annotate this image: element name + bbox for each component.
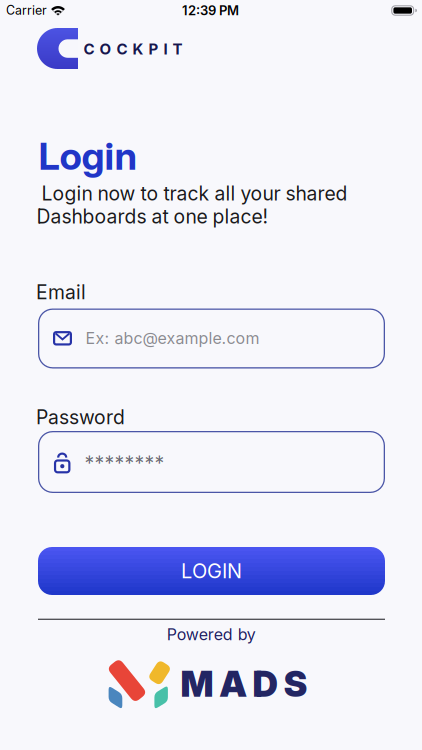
staticText: LOGIN [181,559,242,583]
staticText: Login now to track all your shared [41,182,347,205]
staticText: 12:39 PM [182,3,239,18]
staticText: M A D S [180,663,307,705]
staticText: Email [36,281,86,304]
button[interactable]: Password [38,431,385,493]
staticText: Login [38,133,137,179]
staticText: Password [36,406,125,429]
staticText: ******** [84,452,164,475]
staticText: Powered by [167,625,256,644]
staticText: C O C K P I T [83,40,182,58]
button[interactable]: Email [38,308,385,368]
staticText: Carrier [6,3,47,18]
staticText: Ex: abc@example.com [85,329,259,348]
button[interactable]: LOGIN [38,547,385,595]
staticText: Dashboards at one place! [36,205,268,228]
